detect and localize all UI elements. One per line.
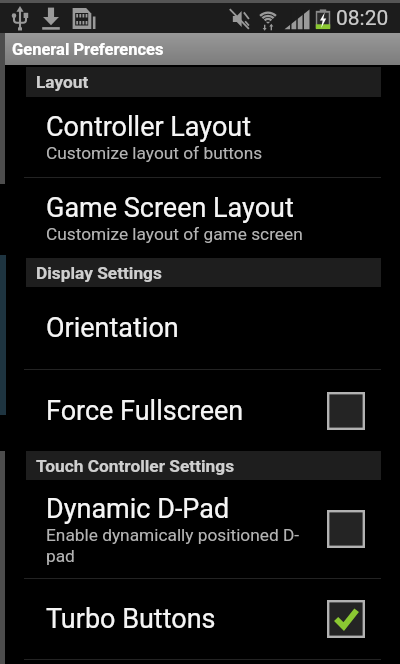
staticText: 08:20 xyxy=(336,6,389,31)
staticText: Orientation xyxy=(46,312,179,344)
staticText: Customize layout of buttons xyxy=(46,143,263,163)
button[interactable]: Orientation xyxy=(0,287,400,369)
button[interactable]: Turbo Buttons xyxy=(0,579,400,659)
staticText: Enable dynamically positioned D-pad xyxy=(46,525,310,566)
staticText: Force Fullscreen xyxy=(46,395,244,427)
button[interactable]: Force Fullscreen xyxy=(0,370,400,451)
staticText: Touch Controller Settings xyxy=(36,456,235,476)
button[interactable]: Unchecked xyxy=(327,510,365,548)
staticText: Customize layout of game screen xyxy=(46,224,303,244)
button[interactable]: Controller Layout xyxy=(0,97,400,177)
button[interactable]: Dynamic D-Pad xyxy=(0,480,400,578)
staticText: Dynamic D-Pad xyxy=(46,493,230,525)
button[interactable]: Game Screen Layout xyxy=(0,178,400,258)
staticText: Display Settings xyxy=(36,263,162,283)
button[interactable]: Checked xyxy=(327,600,365,638)
staticText: Game Screen Layout xyxy=(46,192,294,224)
staticText: Turbo Buttons xyxy=(46,603,216,635)
button[interactable]: Unchecked xyxy=(327,392,365,430)
staticText: General Preferences xyxy=(12,40,164,59)
staticText: Controller Layout xyxy=(46,111,252,143)
staticText: Layout xyxy=(36,72,89,92)
